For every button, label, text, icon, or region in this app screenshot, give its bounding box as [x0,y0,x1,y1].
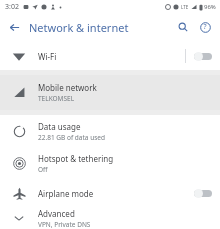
button[interactable]: Back [5,18,23,36]
button[interactable]: Search [174,18,192,36]
button[interactable]: Hotspot & tethering [0,147,220,179]
button[interactable]: Wi-Fi toggle [186,44,220,68]
staticText: Mobile network [38,82,97,93]
button[interactable]: Advanced [0,207,220,229]
staticText: Advanced [38,208,75,219]
staticText: Network & internet [29,20,129,35]
button[interactable]: Airplane mode toggle [186,179,220,207]
staticText: 96% [204,3,216,11]
staticText: 3:02 [5,2,19,12]
staticText: ? [203,22,207,32]
staticText: VPN, Private DNS [38,220,91,229]
staticText: 22.81 GB of data used [38,133,105,142]
staticText: Data usage [38,121,81,132]
button[interactable]: Data usage [0,115,220,147]
staticText: Airplane mode [38,188,186,199]
button[interactable]: Mobile network [0,75,220,110]
staticText: Hotspot & tethering [38,153,114,164]
staticText: Wi-Fi [38,51,185,62]
staticText: Off [38,165,48,174]
button[interactable]: Airplane mode [0,179,220,207]
button[interactable]: Help [196,18,214,36]
button[interactable]: Wi-Fi [0,44,220,68]
staticText: LTE [181,4,189,10]
staticText: TELKOMSEL [38,94,75,103]
